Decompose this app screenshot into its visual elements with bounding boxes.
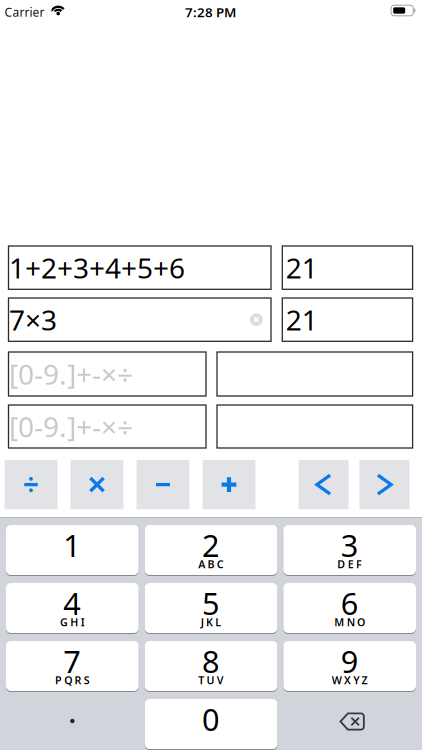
button[interactable]: Multiply [70, 460, 123, 509]
staticText: J [201, 615, 204, 629]
staticText: Y [353, 673, 359, 687]
staticText: 21 [286, 301, 318, 338]
button[interactable]: 9 [283, 641, 416, 692]
button[interactable]: 3 [283, 525, 416, 576]
button[interactable]: Divide [4, 460, 57, 509]
staticText: Carrier [4, 4, 44, 20]
staticText: 3 [341, 525, 359, 565]
staticText: K [206, 615, 213, 629]
staticText: B [208, 557, 215, 571]
staticText: H [70, 615, 78, 629]
button[interactable]: Clear text [249, 313, 263, 327]
staticText: 7×3 [9, 301, 57, 338]
staticText: [0-9.]+-×÷ [9, 408, 133, 445]
staticText: V [217, 673, 224, 687]
button[interactable]: 1+2+3+4+5+6 [8, 246, 271, 289]
staticText: O [357, 615, 365, 629]
staticText: N [347, 615, 355, 629]
staticText: I [81, 615, 85, 629]
button[interactable]: 1 [6, 525, 139, 576]
button[interactable]: Add [202, 460, 255, 509]
staticText: A [198, 557, 205, 571]
staticText: 7:28 PM [185, 3, 236, 21]
button[interactable]: 7×3 [8, 298, 271, 341]
staticText: S [84, 673, 90, 687]
staticText: W [332, 673, 342, 687]
staticText: 21 [286, 249, 318, 286]
button[interactable]: [0-9.]+-×÷ [8, 352, 206, 396]
button[interactable]: Subtract [136, 460, 189, 509]
staticText: U [207, 673, 215, 687]
staticText: 1+2+3+4+5+6 [9, 249, 185, 286]
staticText: L [215, 615, 221, 629]
button[interactable]: Decimal point [6, 696, 139, 746]
staticText: 4 [63, 583, 81, 623]
staticText: Q [64, 673, 72, 687]
staticText: 7 [63, 641, 81, 681]
button[interactable]: 2 [145, 525, 277, 576]
button[interactable]: 6 [283, 583, 416, 634]
staticText: C [217, 557, 224, 571]
staticText: T [198, 673, 204, 687]
button[interactable]: 0 [145, 699, 277, 750]
staticText: P [55, 673, 62, 687]
staticText: X [344, 673, 351, 687]
staticText: 2 [202, 525, 220, 565]
staticText: 5 [202, 583, 220, 623]
button[interactable]: 4 [6, 583, 139, 634]
staticText: 6 [341, 583, 359, 623]
staticText: [0-9.]+-×÷ [9, 355, 133, 393]
button[interactable]: 8 [145, 641, 277, 692]
button[interactable]: Delete [339, 712, 365, 730]
staticText: 0 [202, 699, 220, 739]
button[interactable]: Previous [298, 460, 348, 509]
staticText: F [356, 557, 362, 571]
button[interactable]: [0-9.]+-×÷ [8, 405, 206, 448]
staticText: 9 [341, 641, 359, 681]
staticText: M [334, 615, 344, 629]
staticText: G [60, 615, 68, 629]
button[interactable]: 5 [145, 583, 277, 634]
staticText: 1 [63, 525, 81, 565]
button[interactable]: 7 [6, 641, 139, 692]
staticText: D [337, 557, 345, 571]
button[interactable]: Next [359, 460, 409, 509]
staticText: R [74, 673, 81, 687]
staticText: E [348, 557, 354, 571]
staticText: Z [362, 673, 368, 687]
staticText: 8 [202, 641, 220, 681]
